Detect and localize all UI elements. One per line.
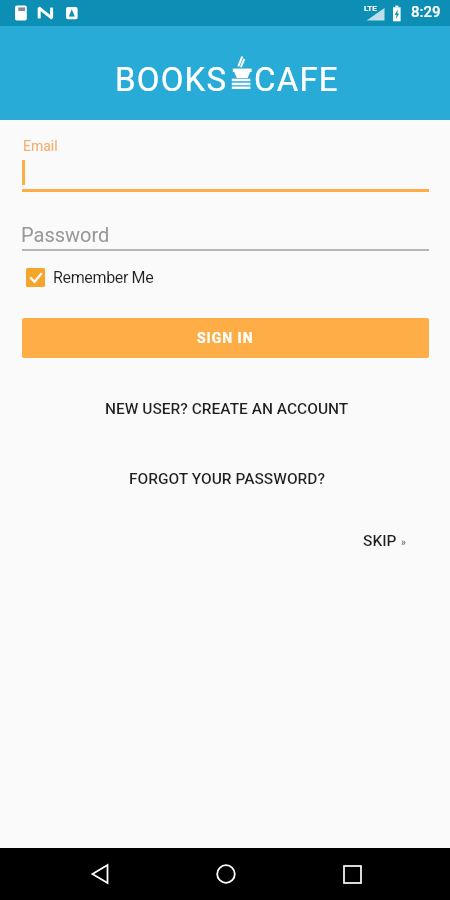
staticText: SIGN IN [197, 330, 254, 346]
staticText: » [401, 537, 406, 549]
button[interactable]: SKIP [363, 529, 415, 553]
button[interactable]: Password [22, 215, 429, 251]
button[interactable]: Email [22, 130, 429, 192]
button[interactable]: Back [76, 848, 126, 900]
button[interactable]: NEW USER? CREATE AN ACCOUNT [2, 395, 450, 423]
button[interactable]: SIGN IN [22, 318, 429, 358]
staticText: BOOKS [115, 60, 228, 99]
staticText: Password [21, 223, 110, 246]
button[interactable]: Remember Me [26, 268, 154, 287]
button[interactable]: Recent apps [327, 848, 377, 900]
staticText: CAFE [254, 60, 339, 99]
button[interactable]: FORGOT YOUR PASSWORD? [2, 465, 450, 493]
button[interactable]: Home [200, 848, 251, 900]
staticText: LTE [364, 4, 377, 13]
staticText: SKIP [363, 532, 397, 550]
staticText: FORGOT YOUR PASSWORD? [129, 470, 325, 488]
staticText: Email [23, 138, 58, 154]
staticText: NEW USER? CREATE AN ACCOUNT [105, 400, 349, 418]
staticText: Remember Me [53, 268, 154, 287]
staticText: 8:29 [411, 3, 441, 21]
